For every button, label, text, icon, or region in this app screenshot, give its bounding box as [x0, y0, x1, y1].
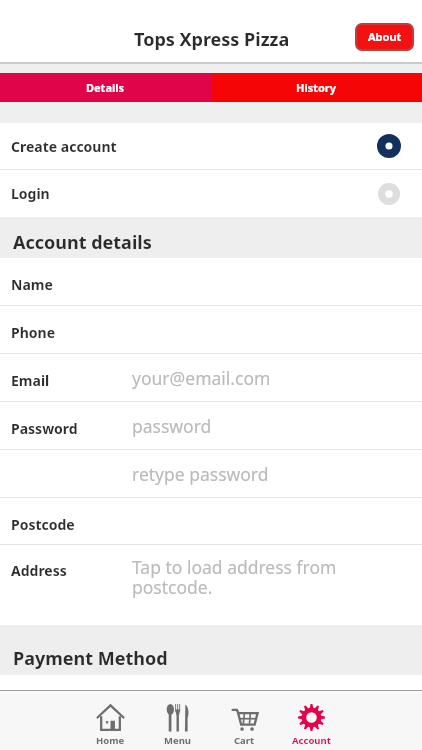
staticText: Tops Xpress Pizza	[134, 27, 290, 52]
staticText: Password	[11, 419, 78, 438]
staticText: Name	[11, 275, 53, 294]
button[interactable]: History	[211, 73, 422, 102]
button[interactable]: Create account	[0, 123, 422, 169]
other: Cart	[231, 704, 258, 731]
button[interactable]: Email	[0, 354, 422, 401]
staticText: password	[132, 414, 414, 438]
button[interactable]: Password	[0, 402, 422, 449]
staticText: Login	[11, 184, 377, 203]
button[interactable]: Name	[0, 258, 422, 305]
other: Not selected	[377, 182, 401, 206]
button[interactable]: Menu	[144, 690, 211, 750]
staticText: Home	[96, 734, 125, 747]
staticText: History	[296, 80, 337, 95]
staticText: your@email.com	[132, 366, 414, 390]
staticText: retype password	[132, 462, 414, 486]
other: Home	[97, 704, 124, 731]
button[interactable]: Details	[0, 73, 211, 102]
button[interactable]: About	[357, 25, 412, 49]
staticText: Menu	[164, 734, 191, 747]
button[interactable]: Address	[0, 545, 422, 625]
staticText: Postcode	[11, 515, 75, 534]
staticText: Cart	[234, 734, 255, 747]
staticText: Phone	[11, 323, 56, 342]
staticText: Account	[292, 734, 331, 747]
staticText: Account details	[13, 230, 152, 255]
staticText: Email	[11, 371, 50, 390]
button[interactable]: Home	[77, 690, 144, 750]
button[interactable]: Account	[278, 690, 345, 750]
other: Menu	[164, 704, 191, 731]
button[interactable]: Phone	[0, 306, 422, 353]
staticText: Details	[86, 80, 125, 95]
button[interactable]: Postcode	[0, 498, 422, 544]
button[interactable]: Login	[0, 170, 422, 217]
button[interactable]: Cart	[211, 690, 278, 750]
staticText: Payment Method	[13, 646, 168, 671]
staticText: Create account	[11, 137, 377, 156]
staticText: About	[368, 29, 402, 44]
staticText: Address	[11, 561, 67, 580]
staticText: Tap to load address from postcode.	[132, 555, 382, 600]
other: Selected	[377, 134, 401, 158]
other: Account	[298, 704, 325, 731]
button[interactable]: retype password	[0, 450, 422, 497]
